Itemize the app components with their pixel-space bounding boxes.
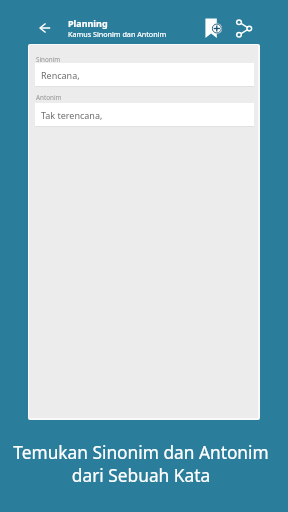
staticText: Temukan Sinonim dan Antonim dari Sebuah … <box>0 441 285 487</box>
staticText: Antonim <box>36 93 62 102</box>
staticText: Tak terencana, <box>41 109 103 121</box>
button[interactable]: Rencana, <box>35 63 254 86</box>
button[interactable]: Tak terencana, <box>35 103 254 126</box>
staticText: Planning <box>68 17 108 29</box>
button[interactable]: Add bookmark <box>203 16 225 38</box>
staticText: Rencana, <box>41 69 80 81</box>
staticText: Kamus Sinonim dan Antonim <box>68 29 167 39</box>
staticText: Sinonim <box>36 55 61 64</box>
button[interactable]: Share <box>234 17 256 39</box>
button[interactable]: Back <box>33 16 57 40</box>
